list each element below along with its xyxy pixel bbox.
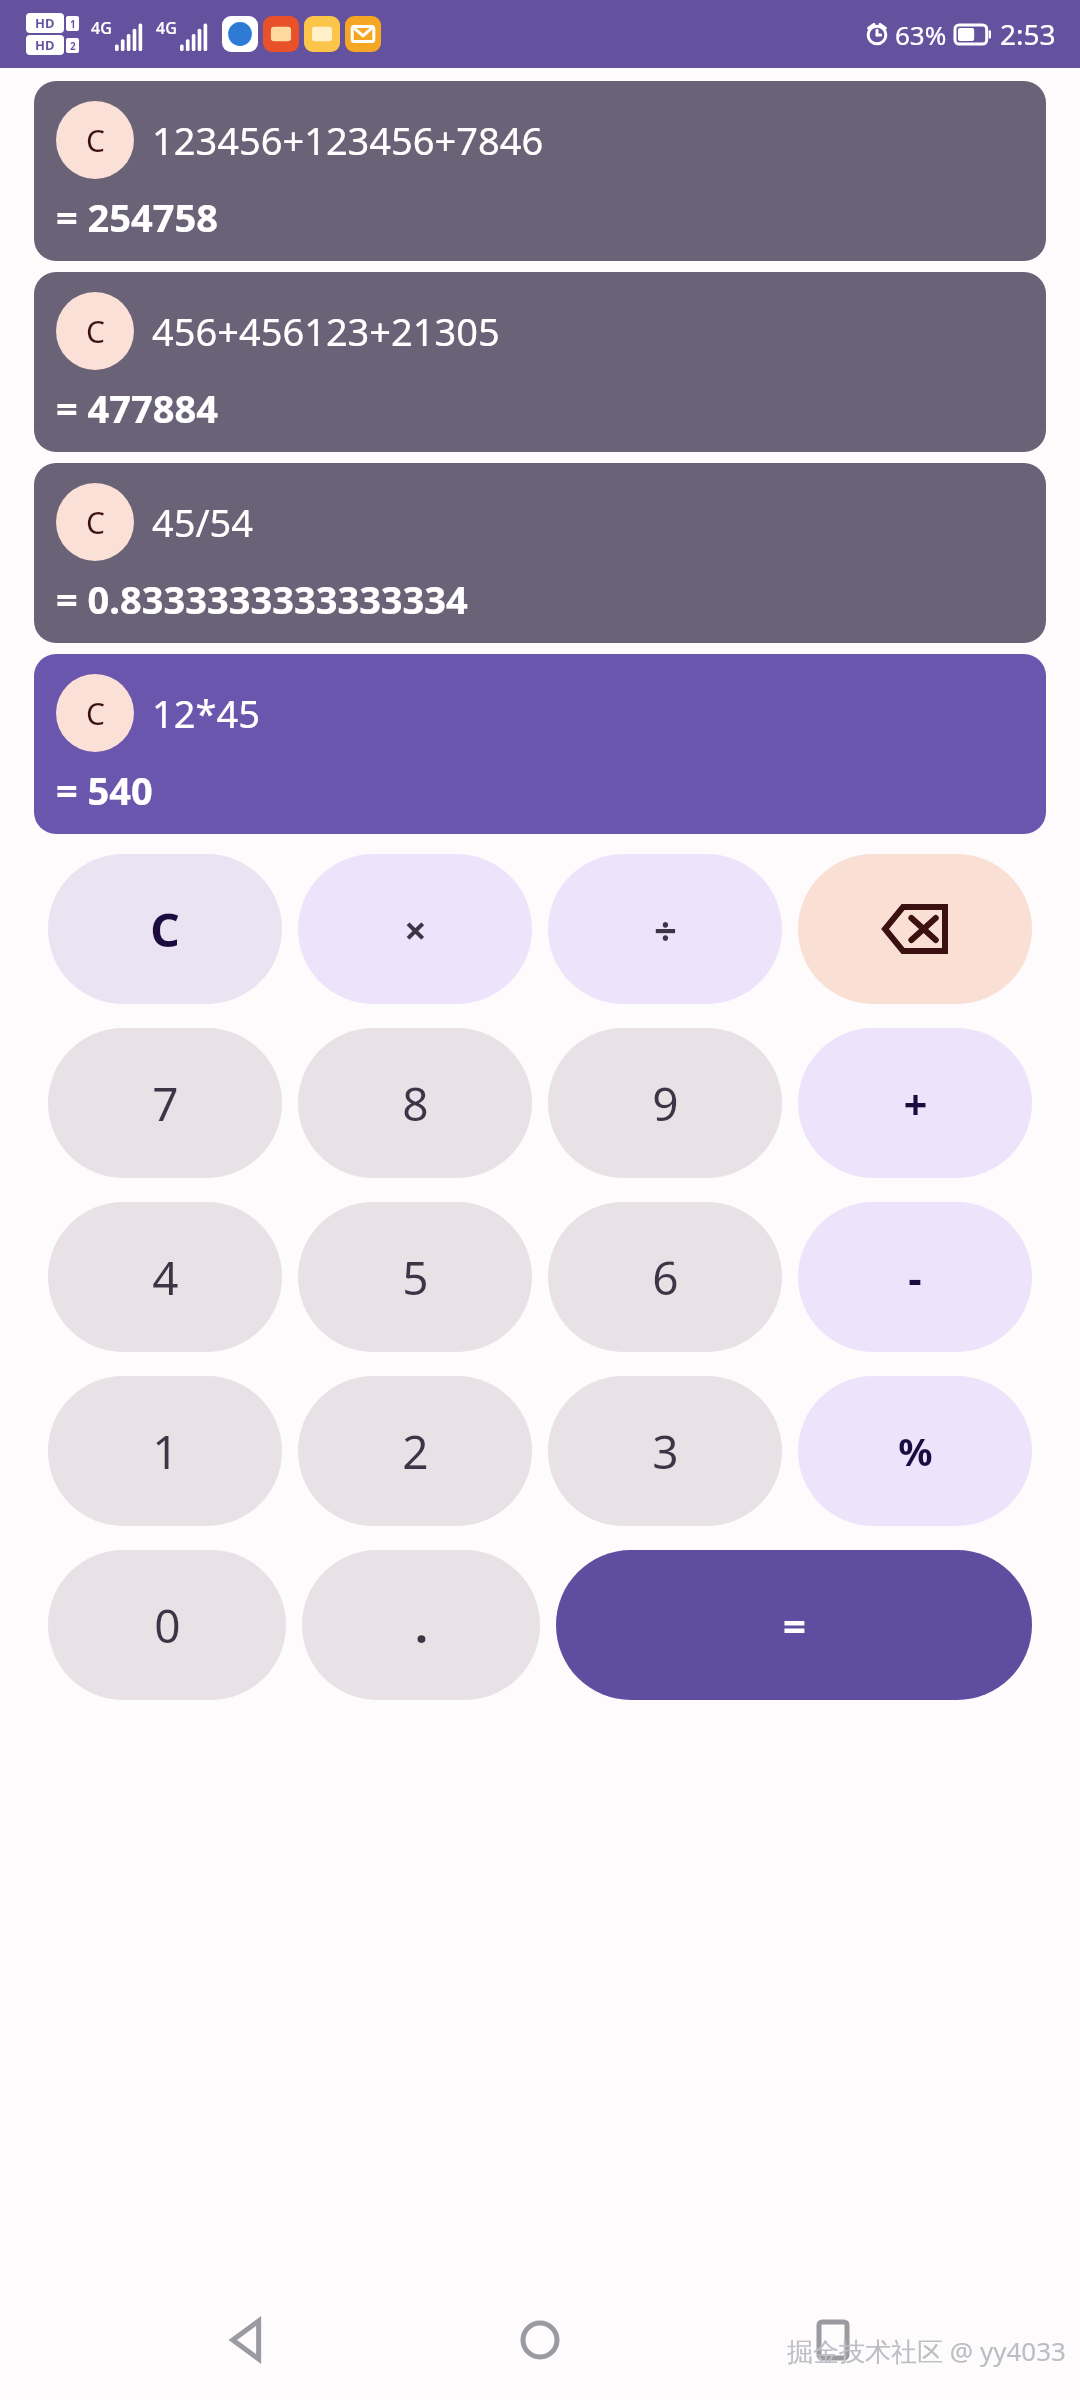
button[interactable]: 4 <box>48 1202 282 1352</box>
button[interactable]: 7 <box>48 1028 282 1178</box>
staticText: = 0.8333333333333334 <box>56 573 468 625</box>
staticText: 1 <box>152 1420 179 1483</box>
staticText: HD <box>35 36 55 54</box>
button[interactable]: 2 <box>298 1376 532 1526</box>
button[interactable]: 5 <box>298 1202 532 1352</box>
button[interactable]: + <box>798 1028 1032 1178</box>
staticText: 9 <box>652 1072 679 1135</box>
button[interactable]: Recent apps <box>788 2295 878 2385</box>
staticText: × <box>404 902 427 956</box>
staticText: + <box>903 1075 928 1132</box>
button[interactable]: C <box>34 654 1046 834</box>
button[interactable]: C <box>34 463 1046 643</box>
staticText: ÷ <box>654 902 677 956</box>
button[interactable]: Home <box>495 2295 585 2385</box>
staticText: 123456+123456+7846 <box>152 114 544 166</box>
button[interactable]: ÷ <box>548 854 782 1004</box>
staticText: C <box>86 693 105 734</box>
staticText: 1 <box>70 17 76 31</box>
button[interactable]: . <box>302 1550 540 1700</box>
staticText: - <box>908 1249 922 1306</box>
staticText: 45/54 <box>152 496 254 548</box>
button[interactable]: 8 <box>298 1028 532 1178</box>
staticText: 4G <box>91 17 112 39</box>
staticText: 63% <box>895 17 947 52</box>
staticText: 5 <box>402 1246 429 1309</box>
staticText: 7 <box>152 1072 179 1135</box>
staticText: 6 <box>652 1246 679 1309</box>
button[interactable]: C <box>48 854 282 1004</box>
button[interactable]: Backspace <box>798 854 1032 1004</box>
staticText: % <box>898 1425 933 1477</box>
staticText: 456+456123+21305 <box>152 305 500 357</box>
button[interactable]: % <box>798 1376 1032 1526</box>
staticText: 2:53 <box>1000 15 1056 53</box>
staticText: = 477884 <box>56 382 219 434</box>
button[interactable]: 3 <box>548 1376 782 1526</box>
staticText: = 254758 <box>56 191 219 243</box>
button[interactable]: 0 <box>48 1550 286 1700</box>
button[interactable]: × <box>298 854 532 1004</box>
staticText: C <box>86 311 105 352</box>
button[interactable]: 6 <box>548 1202 782 1352</box>
staticText: C <box>86 120 105 161</box>
staticText: 2 <box>70 39 76 53</box>
staticText: C <box>86 502 105 543</box>
staticText: 12*45 <box>152 687 260 739</box>
button[interactable]: 1 <box>48 1376 282 1526</box>
staticText: . <box>415 1594 428 1657</box>
button[interactable]: - <box>798 1202 1032 1352</box>
staticText: = <box>783 1598 806 1652</box>
staticText: C <box>150 898 180 961</box>
staticText: 8 <box>402 1072 429 1135</box>
button[interactable]: Back <box>203 2295 293 2385</box>
button[interactable]: C <box>34 81 1046 261</box>
staticText: 3 <box>652 1420 679 1483</box>
staticText: 4 <box>152 1246 179 1309</box>
staticText: 掘金技术社区 @ yy4033 <box>787 2333 1066 2369</box>
staticText: = 540 <box>56 764 153 816</box>
staticText: 0 <box>154 1594 181 1657</box>
button[interactable]: C <box>34 272 1046 452</box>
button[interactable]: 9 <box>548 1028 782 1178</box>
staticText: HD <box>35 14 55 32</box>
staticText: 4G <box>156 17 177 39</box>
button[interactable]: = <box>556 1550 1032 1700</box>
staticText: 2 <box>402 1420 429 1483</box>
